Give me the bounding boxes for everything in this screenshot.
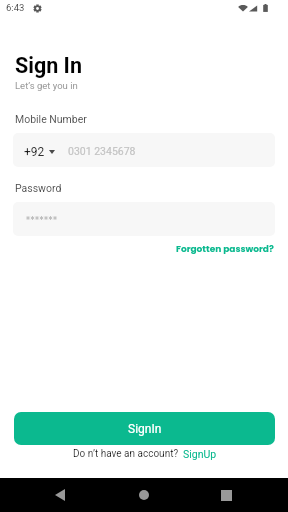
button[interactable]: SignIn xyxy=(14,412,275,445)
staticText: Do n’t have an account? xyxy=(73,448,179,460)
staticText: Sign In xyxy=(15,53,82,78)
button[interactable]: +92 xyxy=(13,133,275,167)
button[interactable]: Recent apps xyxy=(209,478,243,512)
staticText: 6:43 xyxy=(6,2,25,13)
staticText: Let’s get you in xyxy=(15,80,78,91)
button[interactable]: Forgotten password? xyxy=(176,243,274,256)
staticText: SignIn xyxy=(128,422,162,436)
button[interactable]: Home xyxy=(127,478,161,512)
staticText: Mobile Number xyxy=(15,113,87,125)
button[interactable]: Back xyxy=(43,478,77,512)
button[interactable]: SignUp xyxy=(183,448,217,460)
staticText: Password xyxy=(15,182,62,194)
staticText: +92 xyxy=(24,145,45,159)
button[interactable] xyxy=(13,202,275,236)
staticText: 0301 2345678 xyxy=(68,145,136,157)
